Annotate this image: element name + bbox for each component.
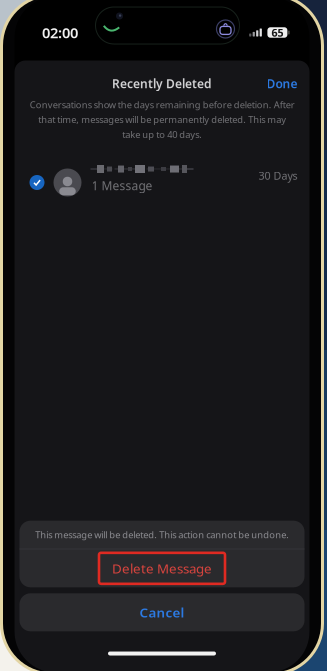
button[interactable]: Cancel [19,593,304,631]
button[interactable]: Done [257,69,306,97]
staticText: Cancel [139,603,184,621]
button[interactable]: Delete Message [19,549,304,587]
staticText: This message will be deleted. This actio… [35,528,289,541]
staticText: Recently Deleted [112,75,212,91]
staticText: Delete Message [112,559,212,577]
staticText: 1 Message [91,177,152,193]
staticText: Done [266,75,297,91]
button[interactable]: 1 Message [14,163,309,201]
staticText: Conversations show the days remaining be… [29,98,294,140]
staticText: 30 Days [258,168,297,183]
staticText: 65 [271,25,283,40]
staticText: 02:00 [42,23,78,42]
